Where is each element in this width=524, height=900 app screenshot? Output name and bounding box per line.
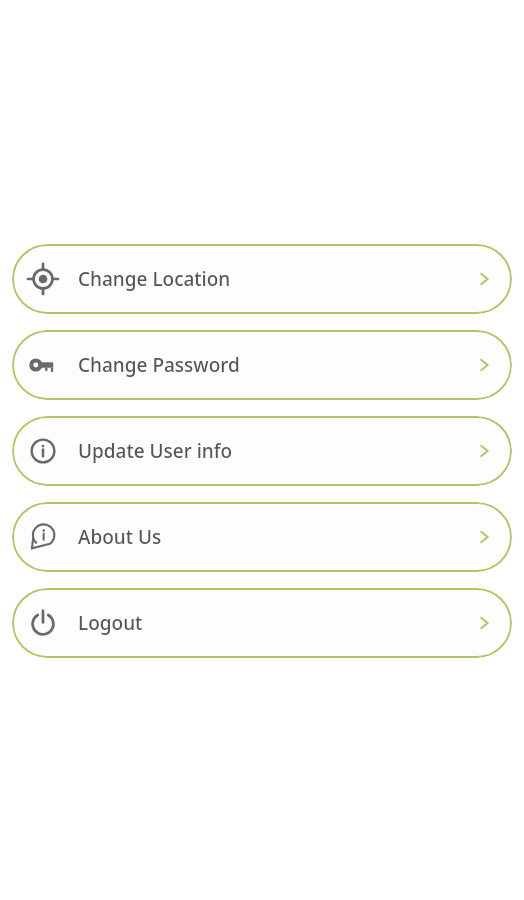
staticText: Change Password: [78, 352, 240, 378]
button[interactable]: Update User info: [12, 416, 512, 486]
button[interactable]: Change Location: [12, 244, 512, 314]
button[interactable]: About Us: [12, 502, 512, 572]
button[interactable]: Logout: [12, 588, 512, 658]
button[interactable]: Change Password: [12, 330, 512, 400]
staticText: About Us: [78, 524, 162, 550]
staticText: Update User info: [78, 438, 233, 464]
staticText: Logout: [78, 610, 143, 636]
staticText: Change Location: [78, 266, 231, 292]
